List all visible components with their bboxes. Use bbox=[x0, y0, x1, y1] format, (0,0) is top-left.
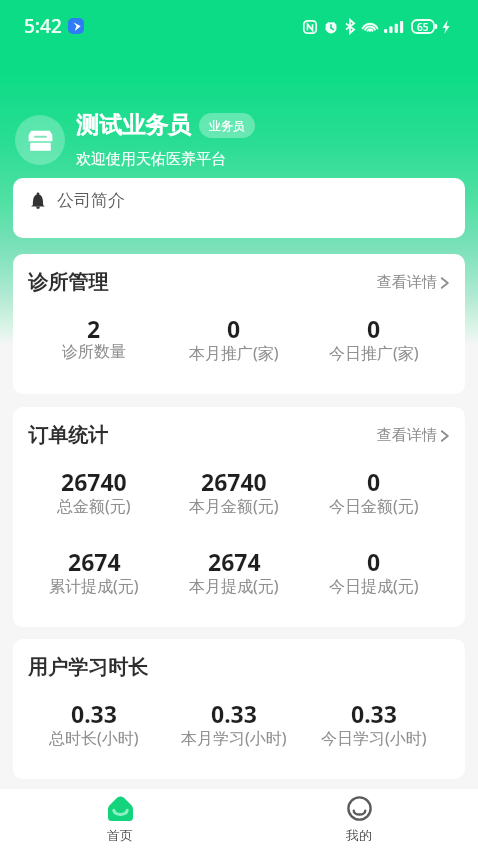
staticText: 26740 bbox=[61, 466, 127, 497]
staticText: 0 bbox=[367, 313, 381, 344]
staticText: 查看详情 bbox=[377, 426, 437, 445]
staticText: 65 bbox=[417, 20, 429, 34]
staticText: 2674 bbox=[68, 546, 121, 577]
staticText: 累计提成(元) bbox=[49, 575, 139, 597]
staticText: 总时长(小时) bbox=[49, 727, 139, 749]
staticText: 2674 bbox=[208, 546, 261, 577]
staticText: 总金额(元) bbox=[57, 495, 131, 517]
staticText: 用户学习时长 bbox=[28, 655, 148, 680]
staticText: 诊所数量 bbox=[62, 342, 126, 362]
button[interactable]: 公司简介 bbox=[13, 178, 465, 238]
staticText: 5:42 bbox=[24, 13, 62, 39]
staticText: 0 bbox=[227, 313, 241, 344]
staticText: 欢迎使用天佑医养平台 bbox=[76, 150, 226, 169]
staticText: 订单统计 bbox=[28, 423, 108, 448]
staticText: 今日推广(家) bbox=[329, 342, 419, 364]
staticText: 测试业务员 bbox=[76, 111, 191, 140]
button[interactable]: 查看详情 bbox=[377, 426, 450, 445]
staticText: 本月学习(小时) bbox=[181, 727, 287, 749]
staticText: 今日提成(元) bbox=[329, 575, 419, 597]
staticText: 0 bbox=[367, 546, 381, 577]
staticText: 0.33 bbox=[71, 698, 117, 729]
staticText: 0 bbox=[367, 466, 381, 497]
staticText: 查看详情 bbox=[377, 273, 437, 292]
staticText: 今日学习(小时) bbox=[321, 727, 427, 749]
staticText: 诊所管理 bbox=[28, 270, 108, 295]
staticText: 本月推广(家) bbox=[189, 342, 279, 364]
staticText: 本月提成(元) bbox=[189, 575, 279, 597]
button[interactable]: 查看详情 bbox=[377, 273, 450, 292]
button[interactable]: 我的 bbox=[239, 789, 478, 850]
staticText: 今日金额(元) bbox=[329, 495, 419, 517]
staticText: 首页 bbox=[107, 827, 133, 843]
staticText: 26740 bbox=[201, 466, 267, 497]
button[interactable]: 首页 bbox=[0, 789, 239, 850]
staticText: 我的 bbox=[346, 827, 372, 843]
staticText: 公司简介 bbox=[57, 190, 125, 211]
staticText: 本月金额(元) bbox=[189, 495, 279, 517]
staticText: 0.33 bbox=[351, 698, 397, 729]
staticText: 业务员 bbox=[209, 118, 245, 133]
staticText: 0.33 bbox=[211, 698, 257, 729]
staticText: 2 bbox=[87, 313, 101, 344]
